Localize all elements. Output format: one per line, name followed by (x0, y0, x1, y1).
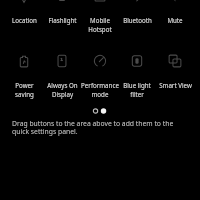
staticText: Always On Display (47, 81, 78, 99)
staticText: Drag buttons to the area above to add th… (12, 119, 174, 136)
other: Page 2 of 2 (92, 107, 108, 115)
staticText: Flashlight (48, 16, 77, 24)
button[interactable]: Power saving (1, 58, 47, 102)
button[interactable]: Mobile Hotspot (77, 0, 123, 37)
staticText: Performance mode (81, 81, 119, 99)
button[interactable]: Smart View (152, 58, 198, 102)
staticText: Smart View (159, 81, 192, 89)
staticText: Mobile Hotspot (88, 16, 112, 34)
button[interactable]: Performance mode (77, 58, 123, 102)
staticText: Blue light filter (123, 81, 151, 99)
button[interactable]: Mute (152, 0, 198, 37)
button[interactable]: Bluetooth (114, 0, 160, 37)
button[interactable]: Blue light filter (114, 58, 160, 102)
button[interactable]: Always On Display (39, 58, 85, 102)
staticText: Location (12, 16, 37, 24)
staticText: Bluetooth (123, 16, 152, 24)
button[interactable]: Flashlight (39, 0, 85, 37)
staticText: Mute (167, 16, 183, 24)
staticText: Power saving (15, 81, 34, 99)
button[interactable]: Location (1, 0, 47, 37)
